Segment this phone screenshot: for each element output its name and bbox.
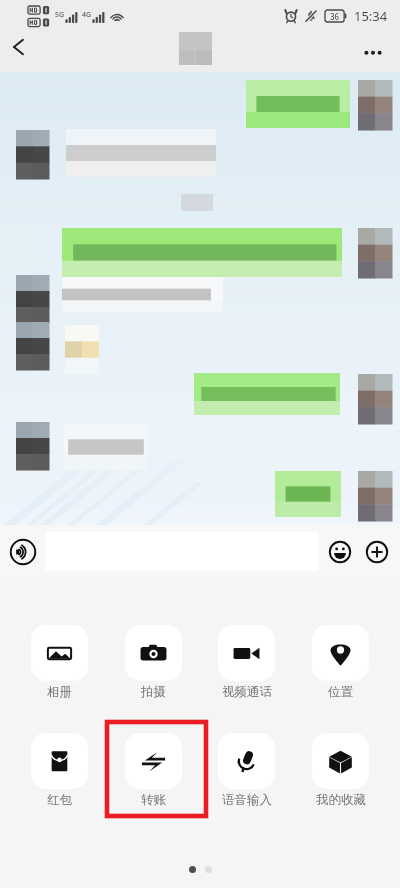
button[interactable]: 转账 — [104, 730, 203, 824]
button[interactable]: 相册 — [10, 622, 109, 716]
staticText: 视频通话 — [222, 684, 272, 700]
staticText: 我的收藏 — [316, 792, 366, 808]
button[interactable]: 拍摄 — [104, 622, 203, 716]
button[interactable] — [246, 80, 350, 128]
staticText: 位置 — [328, 684, 353, 700]
button[interactable] — [66, 129, 216, 177]
staticText: 4G — [82, 10, 92, 20]
button[interactable] — [275, 471, 341, 517]
button[interactable] — [64, 424, 148, 470]
staticText: 相册 — [47, 684, 72, 700]
staticText: 语音输入 — [222, 792, 272, 808]
button[interactable]: 位置 — [291, 622, 390, 716]
button[interactable]: 我的收藏 — [291, 730, 390, 824]
staticText: 15:34 — [354, 7, 388, 25]
button[interactable] — [62, 277, 223, 312]
button[interactable]: More options — [357, 36, 389, 68]
staticText: 转账 — [141, 792, 166, 808]
button[interactable]: Emoji — [326, 538, 354, 566]
staticText: 拍摄 — [141, 684, 166, 700]
button[interactable] — [62, 228, 342, 277]
button[interactable]: Voice message — [9, 538, 37, 566]
staticText: 红包 — [47, 792, 72, 808]
button[interactable]: More functions — [363, 538, 391, 566]
button[interactable] — [194, 373, 340, 415]
button[interactable]: Back — [3, 31, 35, 63]
button[interactable]: 视频通话 — [197, 622, 296, 716]
button[interactable]: 红包 — [10, 730, 109, 824]
staticText: 36 — [330, 11, 340, 22]
staticText: 5G — [55, 10, 65, 20]
button[interactable]: 语音输入 — [197, 730, 296, 824]
